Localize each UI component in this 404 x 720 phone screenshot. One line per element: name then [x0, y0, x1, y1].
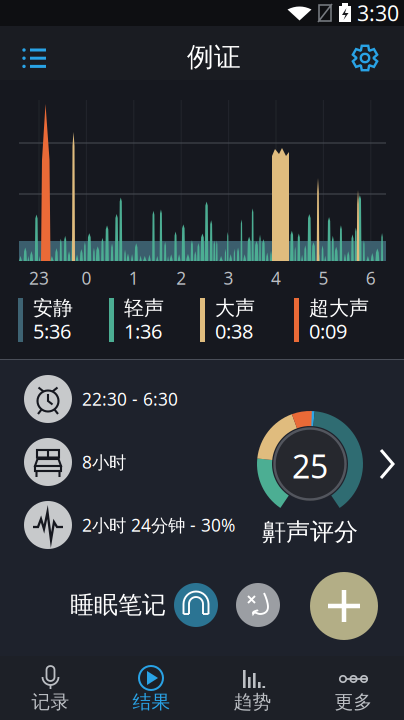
button[interactable]: Teeth grinding note [174, 583, 218, 627]
button[interactable]: Settings [342, 26, 396, 80]
staticText: 更多 [334, 690, 372, 713]
button[interactable]: Add note [310, 572, 378, 640]
staticText: 安静 [33, 296, 73, 320]
staticText: 0 [81, 266, 91, 289]
staticText: 1 [129, 266, 139, 289]
staticText: 5:36 [33, 318, 71, 344]
staticText: 记录 [31, 690, 69, 713]
button[interactable]: 更多 [303, 656, 404, 720]
staticText: 0:38 [215, 318, 253, 344]
button[interactable]: 记录 [0, 656, 101, 720]
staticText: 3:30 [357, 0, 399, 27]
staticText: 睡眠笔记 [70, 590, 166, 620]
staticText: 25 [292, 445, 328, 487]
staticText: 2 [176, 266, 186, 289]
button[interactable]: Details [373, 443, 403, 485]
button[interactable]: Snoring note [236, 583, 280, 627]
staticText: 1:36 [124, 318, 162, 344]
staticText: 5 [318, 266, 328, 289]
button[interactable]: List [8, 26, 62, 80]
staticText: 例证 [187, 41, 241, 73]
staticText: 轻声 [124, 296, 164, 320]
staticText: 结果 [132, 690, 170, 713]
staticText: 22:30 - 6:30 [82, 387, 178, 410]
staticText: 2小时 24分钟 - 30% [82, 513, 235, 536]
staticText: 23 [29, 266, 49, 289]
staticText: 4 [271, 266, 281, 289]
staticText: 0:09 [309, 318, 347, 344]
staticText: 8小时 [82, 450, 126, 473]
staticText: 趋势 [233, 690, 271, 713]
staticText: 6 [366, 266, 376, 289]
staticText: 超大声 [309, 296, 369, 320]
staticText: 鼾声评分 [262, 517, 358, 547]
button[interactable]: 结果 [101, 656, 202, 720]
staticText: 3 [224, 266, 234, 289]
button[interactable]: 趋势 [202, 656, 303, 720]
staticText: 大声 [215, 296, 255, 320]
